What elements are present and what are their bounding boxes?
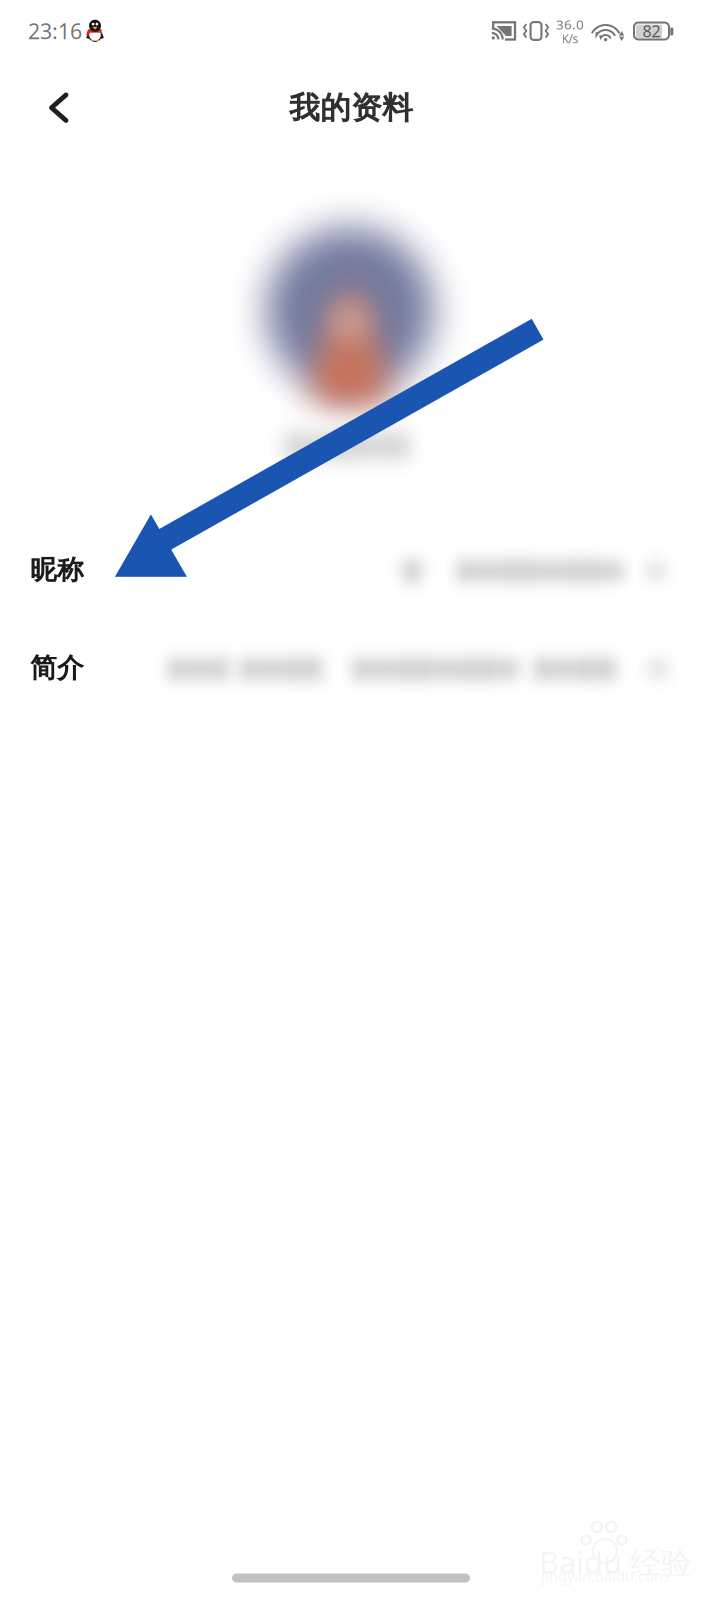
- staticText: 简介: [30, 651, 84, 685]
- staticText: 36.0: [556, 15, 584, 33]
- button[interactable]: Back: [22, 72, 94, 144]
- staticText: 我的资料: [289, 89, 413, 127]
- staticText: 82: [642, 20, 660, 42]
- button[interactable]: 昵称: [0, 522, 702, 618]
- staticText: Baidu 经验: [539, 1541, 692, 1583]
- staticText: K/s: [561, 30, 578, 47]
- button[interactable]: 简介: [0, 620, 702, 716]
- staticText: 23:16: [28, 16, 82, 46]
- staticText: jingyan.baidu.com: [541, 1566, 668, 1586]
- staticText: 昵称: [30, 553, 84, 587]
